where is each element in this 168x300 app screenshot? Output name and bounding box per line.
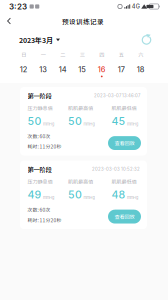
staticText: mmHg xyxy=(84,122,95,126)
staticText: 50 xyxy=(68,115,82,128)
staticText: 第一阶段 xyxy=(27,91,51,100)
staticText: 六 xyxy=(138,51,143,58)
staticText: 15 xyxy=(78,65,86,74)
staticText: 日 xyxy=(21,51,26,58)
staticText: 16 xyxy=(98,65,106,74)
staticText: 次数: 60次 xyxy=(27,133,50,140)
staticText: 18 xyxy=(137,65,145,74)
button[interactable]: 三 xyxy=(72,51,92,77)
button[interactable]: 五 xyxy=(111,51,131,77)
staticText: 45 xyxy=(111,115,125,128)
button[interactable]: 一 xyxy=(33,51,53,77)
staticText: 4G xyxy=(132,3,140,10)
staticText: 50 xyxy=(27,115,41,128)
staticText: 压力静息值 xyxy=(27,104,52,112)
button[interactable]: Back xyxy=(2,14,16,28)
staticText: 查看回放 xyxy=(114,139,134,147)
button[interactable]: 2023年3月 xyxy=(19,32,60,48)
staticText: 49 xyxy=(27,188,41,201)
button[interactable]: 查看回放 xyxy=(108,210,141,223)
staticText: 14 xyxy=(59,65,67,74)
button[interactable]: 六 xyxy=(131,51,150,77)
staticText: mmHg xyxy=(127,122,138,126)
staticText: 预设训练记录 xyxy=(62,16,104,26)
button[interactable]: 查看回放 xyxy=(108,136,141,150)
staticText: 12 xyxy=(20,65,28,74)
staticText: 五 xyxy=(119,51,124,58)
staticText: 肌肌最低值 xyxy=(111,104,136,112)
staticText: 肌肌最低值 xyxy=(111,178,136,185)
button[interactable]: Refresh xyxy=(139,32,154,48)
staticText: 三 xyxy=(80,51,85,58)
button[interactable]: 四 xyxy=(92,51,111,77)
staticText: 四 xyxy=(99,51,104,58)
button[interactable]: 日 xyxy=(14,51,33,77)
staticText: 13 xyxy=(39,65,47,74)
staticText: 压力静息值 xyxy=(27,178,52,185)
staticText: 50 xyxy=(68,188,82,201)
staticText: mmHg xyxy=(84,195,95,200)
staticText: 第一阶段 xyxy=(27,164,51,174)
staticText: 查看回放 xyxy=(114,213,134,220)
staticText: 2023-03-03 10:52:32 xyxy=(92,167,140,172)
staticText: mmHg xyxy=(43,122,54,126)
staticText: mmHg xyxy=(43,195,54,200)
staticText: 耗时: 11分20秒 xyxy=(27,216,61,224)
staticText: 2023年3月 xyxy=(19,35,53,45)
staticText: 次数: 60次 xyxy=(27,206,50,213)
staticText: 肌肌最高值 xyxy=(68,178,93,185)
staticText: 17 xyxy=(118,65,125,74)
staticText: 耗时: 11分20秒 xyxy=(27,143,61,150)
staticText: 一 xyxy=(41,51,46,58)
staticText: mmHg xyxy=(127,195,138,200)
staticText: 2023-03-07 13:46:07 xyxy=(94,93,140,98)
staticText: 3:23 xyxy=(9,2,27,11)
button[interactable]: 二 xyxy=(53,51,72,77)
staticText: 48 xyxy=(111,188,125,201)
staticText: 肌肌最高值 xyxy=(68,104,93,112)
staticText: 二 xyxy=(60,51,65,58)
